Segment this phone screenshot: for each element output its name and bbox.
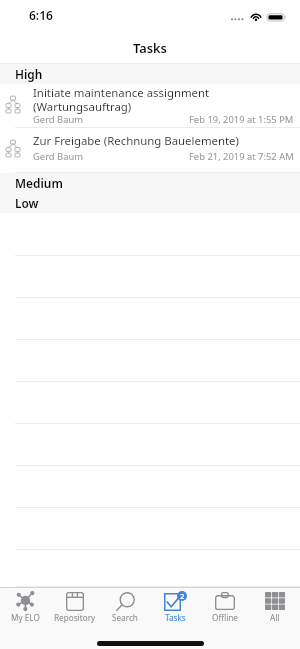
button[interactable]: All xyxy=(250,588,300,624)
staticText: High xyxy=(15,66,43,82)
staticText: Medium xyxy=(15,175,63,191)
staticText: Initiate maintenance assignment xyxy=(33,85,210,101)
staticText: (Wartungsauftrag) xyxy=(33,99,132,115)
staticText: Search xyxy=(112,612,138,623)
button[interactable]: Zur Freigabe (Rechnung Bauelemente) xyxy=(0,128,300,173)
staticText: Gerd Baum xyxy=(33,113,83,124)
staticText: Tasks xyxy=(133,39,167,56)
staticText: Feb 21, 2019 at 7:52 AM xyxy=(189,150,294,163)
staticText: Feb 19, 2019 at 1:55 PM xyxy=(189,113,294,124)
staticText: Low xyxy=(15,195,39,211)
button[interactable]: My ELO xyxy=(0,588,50,624)
button[interactable]: 2 xyxy=(150,588,200,624)
staticText: 6:16 xyxy=(29,7,53,23)
button[interactable]: Offline xyxy=(200,588,250,624)
staticText: Offline xyxy=(212,612,238,623)
staticText: 2 xyxy=(180,591,185,601)
staticText: Repository xyxy=(54,612,96,623)
button[interactable]: Repository xyxy=(50,588,100,624)
staticText: Zur Freigabe (Rechnung Bauelemente) xyxy=(33,133,239,149)
staticText: Tasks xyxy=(165,612,186,623)
button[interactable]: Search xyxy=(100,588,150,624)
staticText: All xyxy=(270,612,280,623)
button[interactable]: Initiate maintenance assignment xyxy=(0,84,300,128)
staticText: My ELO xyxy=(11,612,40,623)
staticText: Gerd Baum xyxy=(33,150,83,163)
